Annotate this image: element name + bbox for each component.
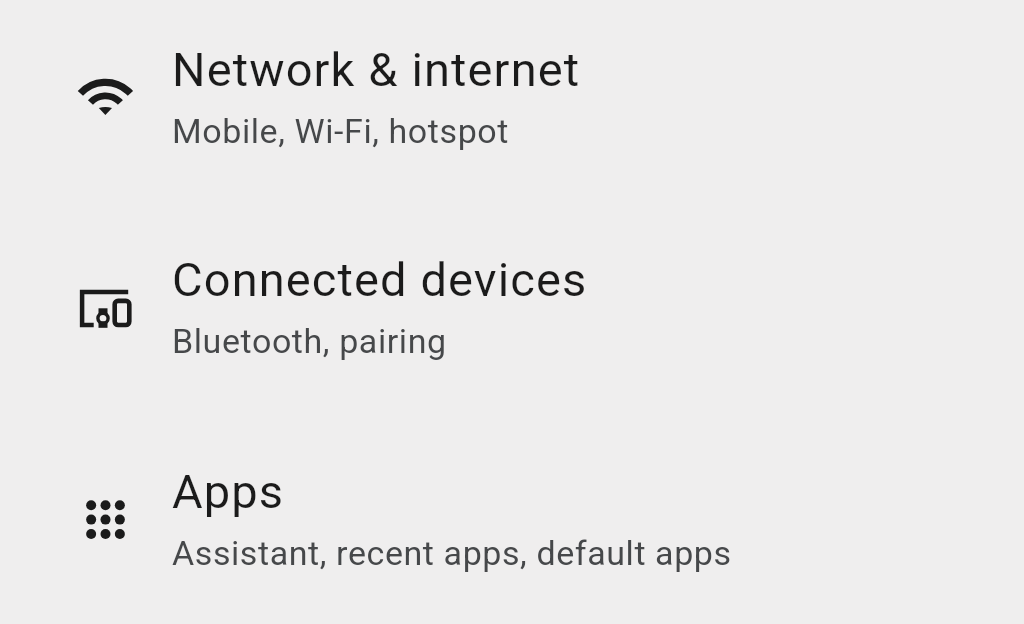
staticText: Mobile, Wi-Fi, hotspot	[172, 111, 510, 151]
button[interactable]: Apps	[0, 422, 1024, 624]
staticText: Network & internet	[172, 42, 581, 97]
other: Apps	[74, 486, 136, 548]
staticText: Apps	[172, 464, 285, 519]
other: Connected devices	[74, 274, 136, 336]
staticText: Assistant, recent apps, default apps	[172, 533, 732, 573]
other: Network and internet	[74, 64, 136, 126]
button[interactable]: Connected devices	[0, 210, 1024, 423]
button[interactable]: Network and internet	[0, 0, 1024, 210]
staticText: Connected devices	[172, 252, 588, 307]
staticText: Bluetooth, pairing	[172, 321, 447, 361]
